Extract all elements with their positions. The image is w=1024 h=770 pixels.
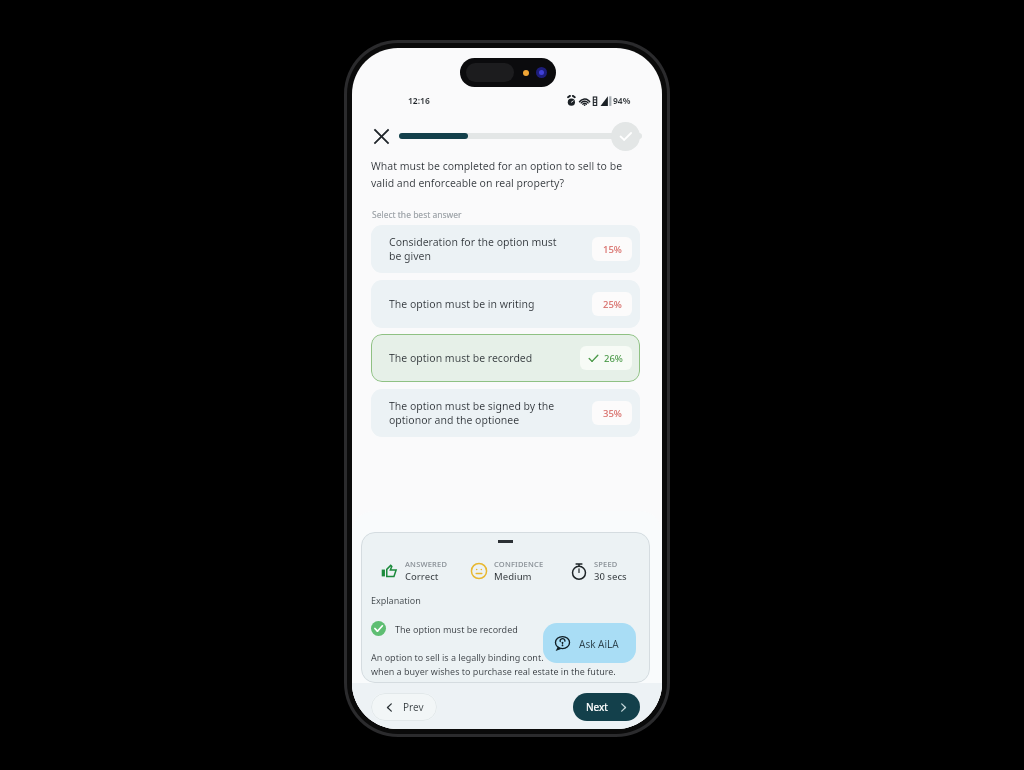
button[interactable]: Consideration for the option must be giv… [371, 225, 640, 273]
button[interactable]: The option must be in writing [371, 280, 640, 328]
button[interactable]: Close [370, 125, 392, 147]
staticText: 35% [603, 407, 622, 420]
staticText: Select the best answer [372, 209, 462, 221]
button[interactable]: The option must be recorded [371, 334, 640, 382]
staticText: What must be completed for an option to … [371, 159, 633, 190]
staticText: Consideration for the option must be giv… [389, 235, 569, 263]
staticText: Ask AiLA [579, 637, 619, 651]
staticText: CONFIDENCE [494, 559, 544, 569]
staticText: 30 secs [594, 570, 627, 583]
staticText: SPEED [594, 559, 618, 569]
staticText: Explanation [371, 594, 421, 606]
staticText: Medium [494, 570, 532, 583]
staticText: Next [586, 700, 608, 714]
button[interactable]: Ask AiLA [543, 623, 636, 663]
staticText: The option must be recorded [389, 351, 569, 365]
button[interactable]: Completed [611, 122, 640, 151]
staticText: 25% [603, 298, 622, 311]
staticText: Prev [403, 700, 424, 714]
staticText: The option must be recorded [395, 623, 518, 635]
staticText: ANSWERED [405, 559, 448, 569]
staticText: when a buyer wishes to purchase real est… [371, 665, 616, 677]
button[interactable]: Next [573, 693, 640, 721]
staticText: 94% [613, 95, 631, 107]
staticText: The option must be signed by the optiono… [389, 399, 569, 427]
staticText: Correct [405, 570, 439, 583]
staticText: 26% [604, 352, 623, 365]
staticText: 15% [603, 243, 622, 256]
button[interactable]: The option must be signed by the optiono… [371, 389, 640, 437]
button[interactable]: Prev [371, 693, 437, 721]
staticText: The option must be in writing [389, 297, 569, 311]
staticText: 12:16 [408, 95, 430, 107]
staticText: An option to sell is a legally binding c… [371, 651, 544, 663]
